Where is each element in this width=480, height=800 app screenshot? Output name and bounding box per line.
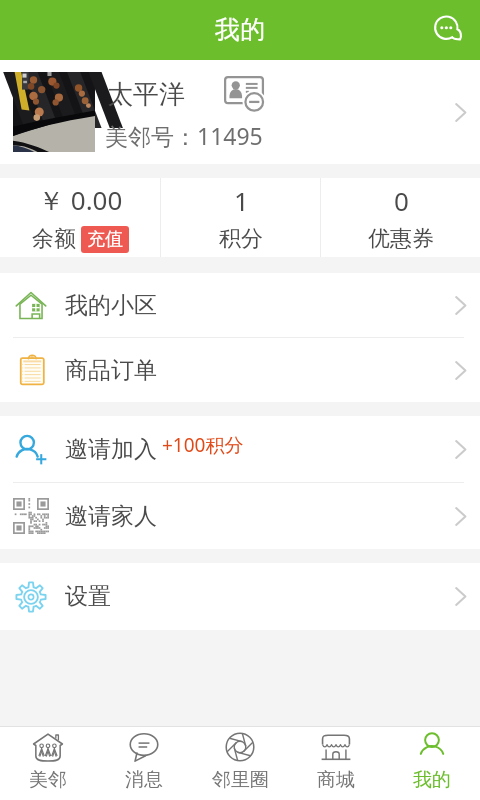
staticText: 商城 — [317, 768, 355, 792]
staticText: +100积分 — [162, 432, 244, 458]
staticText: 1 — [234, 183, 249, 218]
staticText: 0 — [394, 183, 409, 218]
staticText: 美邻号：11495 — [105, 120, 263, 151]
staticText: 我的 — [413, 768, 451, 792]
button[interactable]: 我的小区 — [0, 273, 480, 337]
button[interactable]: 1 — [161, 178, 320, 257]
button[interactable]: 太平洋 — [0, 60, 480, 164]
button[interactable]: 邀请家人 — [0, 483, 480, 549]
staticText: 邻里圈 — [212, 768, 269, 792]
staticText: 设置 — [65, 582, 111, 611]
button[interactable]: 邻里圈 — [192, 727, 288, 800]
staticText: ￥ 0.00 — [38, 182, 123, 218]
button[interactable]: 我的 — [384, 727, 480, 800]
button[interactable]: 0 — [321, 178, 480, 257]
button[interactable]: ￥ 0.00 — [0, 178, 160, 257]
staticText: 充值 — [87, 228, 123, 251]
button[interactable]: 消息 — [96, 727, 192, 800]
staticText: 太平洋 — [107, 78, 185, 111]
staticText: 我的小区 — [65, 291, 157, 320]
staticText: 邀请加入 — [65, 435, 157, 464]
staticText: 商品订单 — [65, 356, 157, 385]
staticText: 美邻 — [29, 768, 67, 792]
button[interactable]: 商品订单 — [0, 338, 480, 402]
staticText: 优惠券 — [368, 225, 434, 253]
staticText: 我的 — [215, 14, 265, 45]
button[interactable]: 设置 — [0, 563, 480, 630]
button[interactable]: 商城 — [288, 727, 384, 800]
button[interactable]: 邀请加入 — [0, 416, 480, 482]
staticText: 余额 — [32, 225, 76, 253]
staticText: 邀请家人 — [65, 502, 157, 531]
staticText: 积分 — [219, 225, 263, 253]
staticText: 消息 — [125, 768, 163, 792]
button[interactable]: 美邻 — [0, 727, 96, 800]
button[interactable]: Messages — [422, 4, 474, 56]
